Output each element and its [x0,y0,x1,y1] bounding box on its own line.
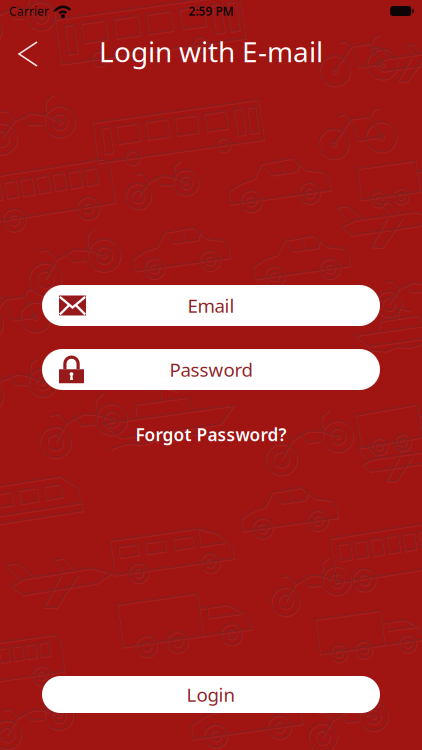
button[interactable]: Login [42,676,380,713]
staticText: Email [187,293,234,318]
staticText: Forgot Password? [135,423,286,446]
button[interactable]: Back [0,33,39,67]
staticText: Carrier [9,3,49,19]
button[interactable]: Email [42,285,380,326]
staticText: 2:59 PM [188,3,233,19]
button[interactable]: Password [42,349,380,390]
staticText: Password [169,357,252,382]
button[interactable]: Forgot Password? [135,423,286,446]
staticText: Login [186,682,235,707]
staticText: Login with E-mail [99,33,323,70]
